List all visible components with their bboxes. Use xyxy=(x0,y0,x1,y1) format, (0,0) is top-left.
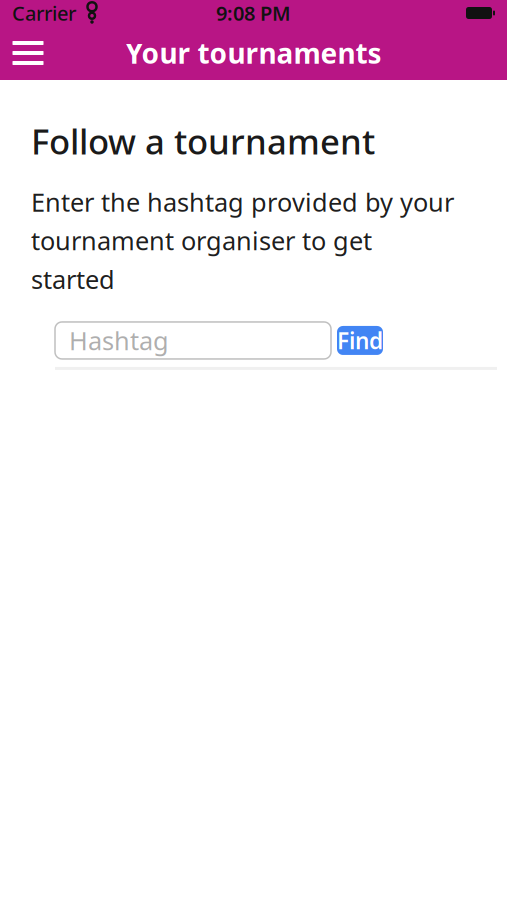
staticText: Carrier xyxy=(12,0,76,26)
staticText: Follow a tournament xyxy=(31,118,375,164)
staticText: Enter the hashtag provided by your tourn… xyxy=(31,185,454,296)
staticText: 9:08 PM xyxy=(216,0,291,26)
staticText: Hashtag xyxy=(69,324,169,357)
staticText: Your tournaments xyxy=(125,34,381,72)
button[interactable]: Find xyxy=(337,326,383,355)
staticText: Find xyxy=(337,325,383,355)
button[interactable]: Hashtag xyxy=(55,322,331,359)
button[interactable]: Menu xyxy=(0,26,56,80)
